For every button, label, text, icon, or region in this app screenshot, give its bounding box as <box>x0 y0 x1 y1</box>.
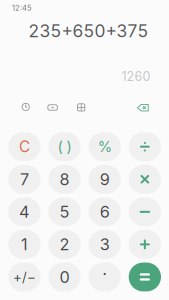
staticText: ( ) <box>57 138 71 155</box>
button[interactable]: 6 <box>88 197 121 226</box>
button[interactable]: 1 <box>8 230 40 259</box>
staticText: % <box>98 138 112 155</box>
staticText: 12:45 <box>12 3 32 12</box>
button[interactable]: 0 <box>48 262 81 291</box>
staticText: 4 <box>19 202 30 222</box>
button[interactable]: 9 <box>88 165 121 194</box>
staticText: 1 <box>21 235 28 254</box>
button[interactable]: 3 <box>88 230 121 259</box>
button[interactable]: Minus <box>129 197 161 226</box>
staticText: 7 <box>20 169 29 189</box>
staticText: 9 <box>100 169 110 189</box>
staticText: 235+650+375 <box>28 20 148 41</box>
button[interactable]: Parentheses <box>48 132 81 161</box>
button[interactable]: 5 <box>48 197 81 226</box>
staticText: 8 <box>59 169 69 189</box>
button[interactable]: Plus <box>129 230 161 259</box>
button[interactable]: Decimal point <box>88 262 121 291</box>
staticText: 0 <box>59 267 69 287</box>
button[interactable]: Delete <box>136 102 150 113</box>
staticText: 2 <box>59 235 69 254</box>
staticText: 1260 <box>122 69 151 84</box>
button[interactable]: Multiply <box>129 165 161 194</box>
staticText: 6 <box>100 202 110 222</box>
staticText: C <box>19 137 30 156</box>
button[interactable]: 2 <box>48 230 81 259</box>
button[interactable]: 4 <box>8 197 40 226</box>
staticText: 3 <box>100 235 110 254</box>
button[interactable]: History <box>19 100 33 114</box>
staticText: +/− <box>13 269 36 285</box>
button[interactable]: Equals <box>129 262 161 291</box>
button[interactable]: 7 <box>8 165 40 194</box>
button[interactable]: Percent <box>88 132 121 161</box>
button[interactable]: Keypad <box>46 100 60 114</box>
button[interactable]: C <box>8 132 40 161</box>
button[interactable]: 8 <box>48 165 81 194</box>
button[interactable]: +/− <box>8 262 40 291</box>
staticText: 5 <box>59 202 69 222</box>
button[interactable]: Divide <box>129 132 161 161</box>
button[interactable]: Unit converter <box>74 100 88 114</box>
